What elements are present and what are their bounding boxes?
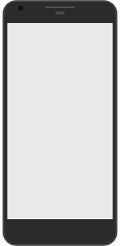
button[interactable]: Phone device illustration: [0, 0, 120, 246]
